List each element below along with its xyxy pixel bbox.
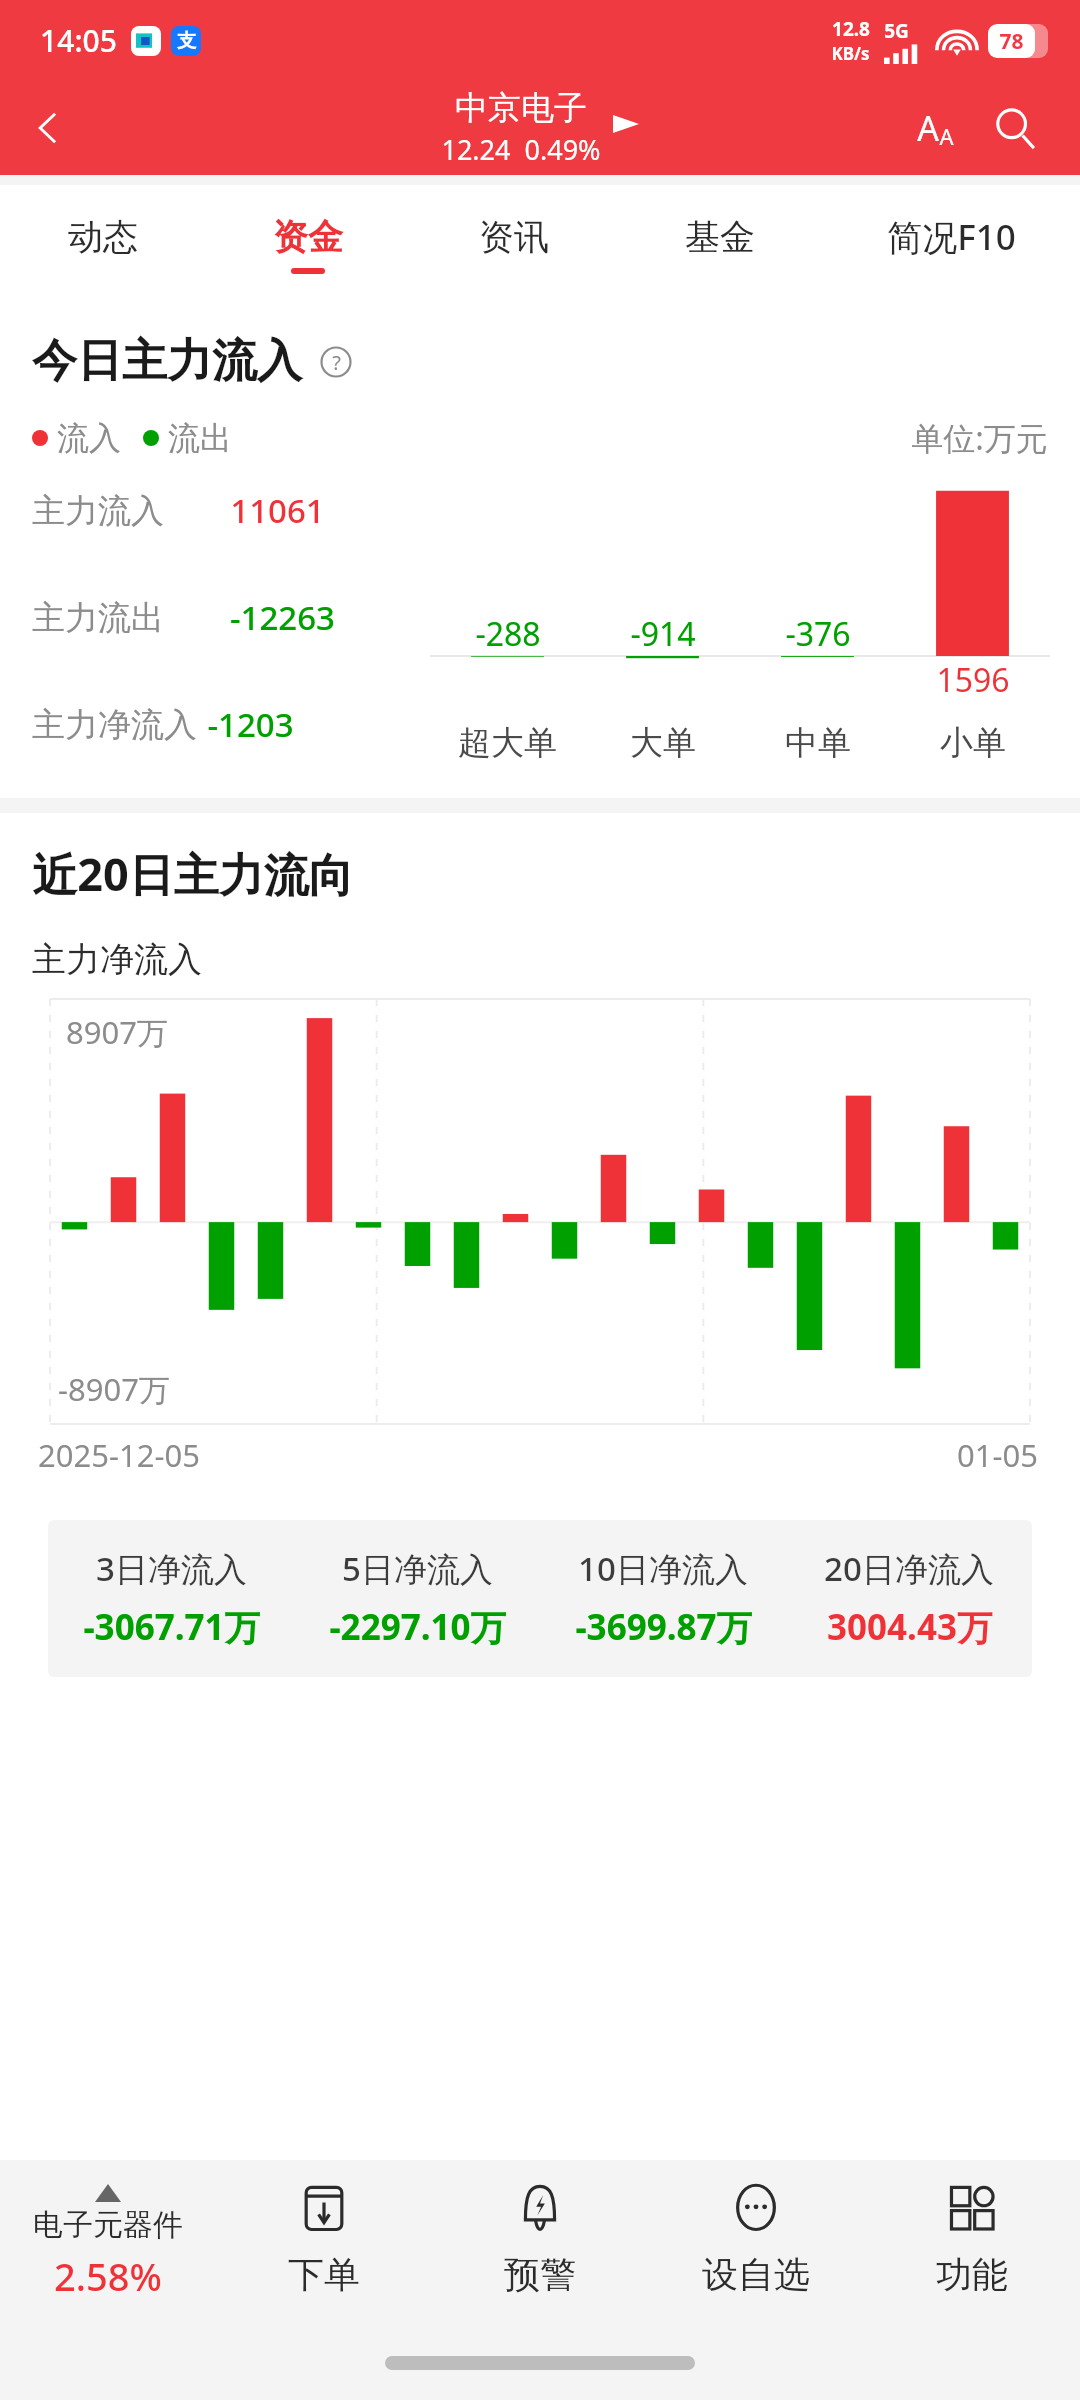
staticText: -12263 [230,595,335,640]
staticText: 支 [177,29,196,53]
button[interactable]: 设自选 [648,2160,864,2325]
staticText: 2.58% [54,2250,162,2302]
staticText: 电子元器件 [33,2206,183,2244]
staticText: 11061 [230,488,325,533]
staticText: 预警 [504,2252,576,2297]
staticText: 20日净流入 [824,1546,994,1591]
staticText: 基金 [685,215,755,259]
staticText: -1203 [207,702,294,747]
staticText: 5日净流入 [342,1546,493,1591]
staticText: A [939,121,954,151]
button[interactable]: 基金 [617,185,823,303]
button[interactable]: 5日净流入 [294,1546,540,1651]
staticText: 12.8 [832,16,870,42]
staticText: 12.24 0.49% [441,131,601,168]
staticText: 中京电子 [455,87,587,129]
staticText: -8907万 [58,1368,170,1410]
staticText: -288 [475,612,541,656]
staticText: 中单 [785,722,851,764]
button[interactable]: 下单 [216,2160,432,2325]
button[interactable]: 功能 [864,2160,1080,2325]
staticText: 动态 [68,215,138,259]
button[interactable]: Search [980,93,1050,163]
staticText: 3004.43万 [827,1603,992,1651]
staticText: 资金 [273,215,343,259]
staticText: 流出 [168,418,232,458]
staticText: 超大单 [458,722,557,764]
staticText: 5G [884,18,909,44]
staticText: 1596 [936,658,1010,702]
button[interactable]: 10日净流入 [540,1546,786,1651]
staticText: A [917,105,939,151]
staticText: 3日净流入 [96,1546,247,1591]
staticText: -3067.71万 [83,1603,260,1651]
button[interactable]: 简况F10 [823,185,1080,303]
button[interactable]: Help [318,344,354,380]
button[interactable]: 资金 [205,185,411,303]
button[interactable]: 电子元器件 [0,2160,216,2325]
staticText: 设自选 [702,2252,810,2297]
staticText: 14:05 [40,20,117,61]
staticText: -2297.10万 [329,1603,506,1651]
staticText: -914 [630,612,696,656]
staticText: 流入 [57,418,121,458]
staticText: 资讯 [479,215,549,259]
button[interactable]: 预警 [432,2160,648,2325]
staticText: 主力净流入 [32,704,197,746]
staticText: 01-05 [957,1434,1038,1476]
staticText: 单位:万元 [911,416,1048,460]
staticText: 8907万 [66,1011,168,1053]
staticText: -376 [785,612,851,656]
button[interactable]: 中京电子 [441,87,639,168]
button[interactable]: 动态 [0,185,205,303]
button[interactable]: 20日净流入 [786,1546,1032,1651]
staticText: 2025-12-05 [38,1434,200,1476]
staticText: 大单 [630,722,696,764]
button[interactable]: 资讯 [411,185,617,303]
button[interactable]: 3日净流入 [48,1546,294,1651]
staticText: 小单 [940,722,1006,764]
staticText: 近20日主力流向 [32,843,354,904]
staticText: 功能 [936,2252,1008,2297]
staticText: 今日主力流入 [32,333,302,390]
staticText: 下单 [288,2252,360,2297]
staticText: 主力净流入 [32,938,202,981]
staticText: -3699.87万 [575,1603,752,1651]
staticText: KB/s [831,42,870,65]
staticText: 主力流出 [32,597,164,639]
staticText: 主力流入 [32,490,164,532]
staticText: 78 [999,27,1024,56]
staticText: ? [332,349,341,376]
button[interactable]: Back [18,97,80,159]
staticText: 10日净流入 [578,1546,748,1591]
button[interactable]: Font size [900,93,970,163]
staticText: 简况F10 [887,213,1016,261]
